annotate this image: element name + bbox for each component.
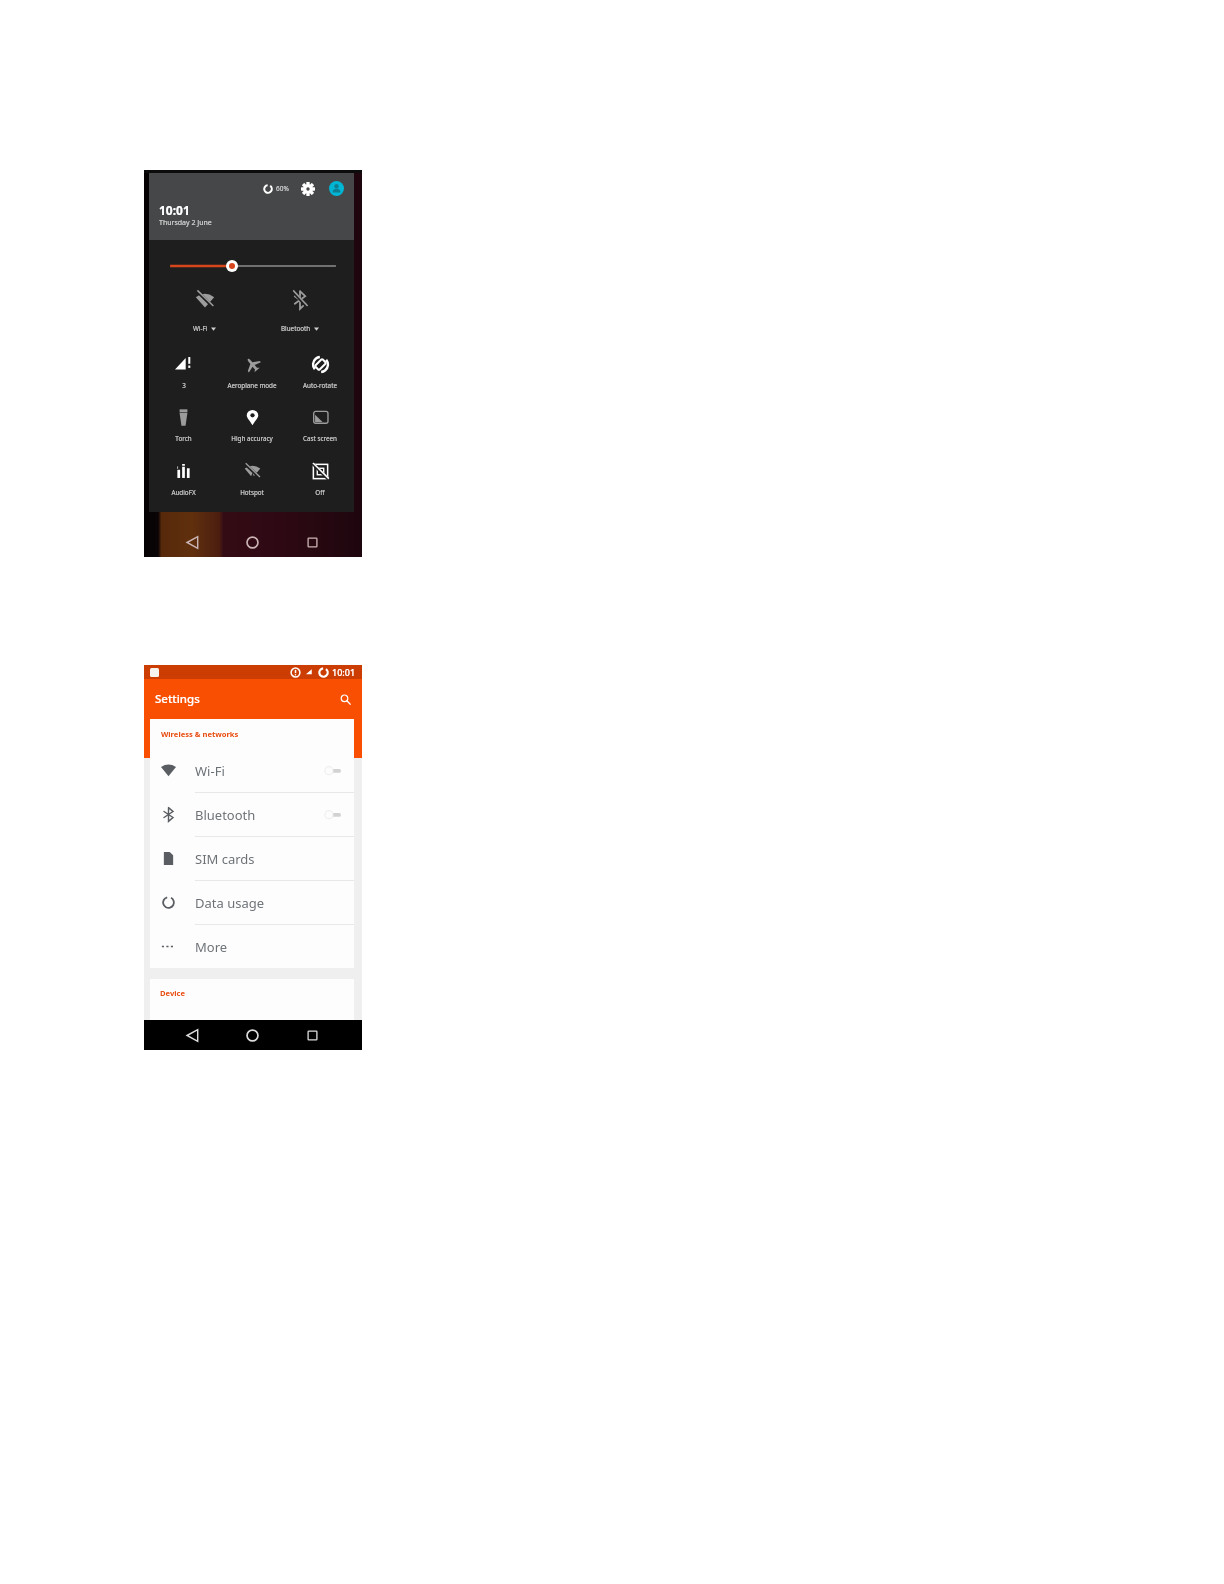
staticText: Thursday 2 June (159, 218, 212, 228)
staticText: Device (160, 988, 185, 998)
staticText: Wi-Fi (193, 324, 208, 333)
staticText: 10:01 (332, 666, 356, 678)
button[interactable]: Search (338, 692, 353, 707)
staticText: More (195, 938, 228, 956)
staticText: Data usage (195, 894, 265, 912)
button[interactable]: Back (162, 1020, 222, 1050)
button[interactable]: Cast screen (286, 401, 354, 454)
staticText: Bluetooth (195, 806, 256, 824)
button[interactable]: Home (222, 1020, 282, 1050)
button[interactable]: SIM cards (150, 837, 354, 881)
staticText: Settings (155, 691, 200, 707)
button[interactable]: Off (286, 455, 354, 508)
button[interactable]: Data usage (150, 881, 354, 925)
button[interactable]: AudioFX (149, 455, 218, 508)
button[interactable]: Torch (149, 401, 218, 454)
button[interactable]: High accuracy (218, 401, 286, 454)
button[interactable]: Aeroplane mode (218, 348, 286, 401)
staticText: AudioFX (171, 488, 196, 497)
button[interactable]: Auto-rotate (286, 348, 354, 401)
button[interactable]: Recents (282, 1020, 342, 1050)
staticText: Wi-Fi (195, 762, 225, 780)
staticText: Bluetooth (281, 324, 311, 333)
staticText: Aeroplane mode (227, 381, 277, 390)
staticText: Wireless & networks (161, 729, 239, 739)
button[interactable]: Settings (300, 181, 315, 196)
staticText: Hotspot (240, 488, 264, 497)
button[interactable]: Bluetooth (252, 284, 347, 346)
button[interactable]: Bluetooth (150, 793, 354, 837)
staticText: 10:01 (159, 202, 190, 218)
button[interactable]: More (150, 925, 354, 968)
button[interactable]: Hotspot (218, 455, 286, 508)
button[interactable]: Brightness (149, 240, 354, 292)
staticText: 60% (276, 184, 289, 193)
button[interactable]: Wi-Fi (157, 284, 252, 346)
button[interactable]: Wi-Fi (150, 749, 354, 793)
button[interactable]: 3 (149, 348, 218, 401)
staticText: Torch (175, 434, 192, 443)
staticText: High accuracy (231, 434, 273, 443)
button[interactable]: Recents (282, 528, 342, 557)
staticText: SIM cards (195, 850, 255, 868)
button[interactable]: Home (222, 528, 282, 557)
staticText: Cast screen (303, 434, 337, 443)
staticText: Off (315, 488, 325, 497)
button[interactable]: User profile (329, 181, 344, 196)
staticText: Auto-rotate (303, 381, 337, 390)
button[interactable]: Back (162, 528, 222, 557)
staticText: 3 (182, 381, 186, 390)
